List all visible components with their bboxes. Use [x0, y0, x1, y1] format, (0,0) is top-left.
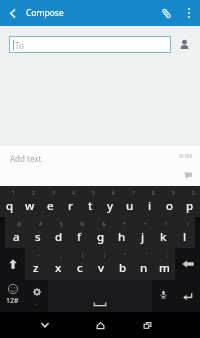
staticText: , — [36, 299, 38, 307]
staticText: " — [124, 252, 127, 259]
button[interactable]: / — [174, 217, 195, 248]
button[interactable]: Recent apps — [127, 312, 167, 338]
button[interactable]: 5 — [80, 186, 100, 217]
button[interactable]: + — [132, 217, 153, 248]
staticText: 3 — [52, 190, 55, 197]
staticText: 8 — [152, 190, 155, 197]
button[interactable]: Voice input — [152, 280, 175, 312]
staticText: 2 — [32, 190, 35, 197]
staticText: 7 — [132, 190, 135, 197]
button[interactable]: 1 — [0, 186, 20, 217]
staticText: 9 — [172, 190, 175, 197]
button[interactable]: @ — [5, 217, 27, 248]
button[interactable]: 12# — [0, 280, 25, 312]
button[interactable]: # — [27, 217, 48, 248]
staticText: f — [77, 229, 82, 245]
button[interactable]: _ — [47, 248, 69, 280]
button[interactable]: Home — [90, 312, 110, 338]
button[interactable]: " — [112, 248, 133, 280]
staticText: % — [80, 221, 85, 228]
button[interactable]: - — [25, 248, 47, 280]
button[interactable]: Contacts — [174, 32, 194, 57]
staticText: e — [47, 198, 54, 214]
staticText: z — [33, 260, 39, 276]
staticText: l — [183, 229, 187, 245]
staticText: i — [148, 198, 152, 214]
staticText: - — [38, 252, 40, 259]
button[interactable]: More options — [178, 0, 200, 26]
staticText: 0 — [192, 190, 195, 197]
button[interactable]: ' — [133, 248, 154, 280]
button[interactable]: Message type — [182, 169, 194, 181]
staticText: ' — [146, 252, 148, 259]
button[interactable]: 4 — [60, 186, 80, 217]
staticText: y — [107, 198, 114, 214]
staticText: 5 — [92, 190, 95, 197]
button[interactable]: ( — [69, 248, 91, 280]
staticText: v — [98, 260, 105, 276]
staticText: d — [55, 229, 63, 245]
staticText: _ — [60, 252, 63, 259]
staticText: x — [55, 260, 62, 276]
staticText: $ — [60, 221, 63, 228]
button[interactable]: ? — [153, 217, 174, 248]
button[interactable]: * — [111, 217, 132, 248]
button[interactable]: % — [69, 217, 90, 248]
button[interactable]: 8 — [140, 186, 160, 217]
staticText: * — [123, 221, 126, 228]
staticText: @ — [17, 221, 22, 228]
staticText: g — [97, 229, 105, 245]
button[interactable]: Space — [48, 280, 152, 312]
staticText: u — [126, 198, 134, 214]
staticText: Compose — [26, 7, 64, 19]
staticText: 6 — [112, 190, 115, 197]
staticText: t — [88, 198, 93, 214]
button[interactable]: Back — [0, 312, 90, 338]
staticText: j — [141, 229, 145, 245]
staticText: + — [144, 221, 147, 228]
staticText: ? — [165, 221, 168, 228]
staticText: 12# — [6, 296, 19, 306]
button[interactable]: & — [90, 217, 111, 248]
staticText: 1 — [12, 190, 15, 197]
staticText: a — [13, 229, 20, 245]
staticText: n — [140, 260, 148, 276]
staticText: / — [187, 221, 189, 228]
button[interactable]: Shift — [0, 248, 25, 280]
staticText: 4 — [72, 190, 75, 197]
staticText: s — [35, 229, 41, 245]
staticText: o — [166, 198, 174, 214]
button[interactable]: : — [154, 248, 175, 280]
button[interactable]: 6 — [100, 186, 120, 217]
staticText: k — [160, 229, 167, 245]
button[interactable]: Back — [0, 0, 24, 26]
staticText: p — [186, 198, 194, 214]
staticText: To — [15, 40, 24, 51]
button[interactable]: ) — [91, 248, 112, 280]
button[interactable]: Enter — [175, 280, 200, 312]
button[interactable]: 0 — [180, 186, 200, 217]
button[interactable]: Attach — [154, 0, 178, 26]
staticText: ) — [104, 252, 106, 259]
staticText: m — [159, 260, 170, 276]
staticText: b — [119, 260, 127, 276]
staticText: ( — [82, 252, 84, 259]
staticText: r — [68, 198, 73, 214]
staticText: : — [167, 252, 169, 259]
staticText: q — [6, 198, 14, 214]
button[interactable]: 3 — [40, 186, 60, 217]
staticText: 0/160 — [179, 153, 193, 160]
button[interactable]: Backspace — [175, 248, 200, 280]
staticText: Add text — [10, 153, 42, 164]
button[interactable]: 9 — [160, 186, 180, 217]
staticText: # — [39, 221, 43, 228]
button[interactable]: Settings — [25, 280, 48, 312]
button[interactable]: $ — [48, 217, 69, 248]
button[interactable]: 2 — [20, 186, 40, 217]
staticText: & — [102, 221, 106, 228]
staticText: h — [118, 229, 126, 245]
staticText: w — [25, 198, 35, 214]
staticText: c — [77, 260, 83, 276]
button[interactable]: To — [9, 36, 171, 53]
button[interactable]: 7 — [120, 186, 140, 217]
